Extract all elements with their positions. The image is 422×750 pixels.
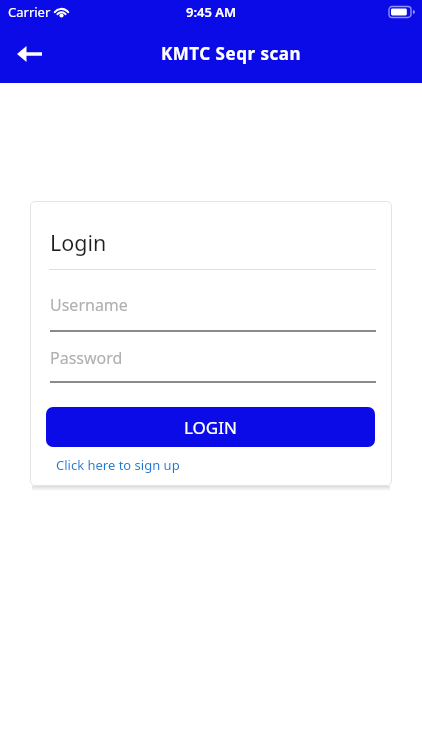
staticText: LOGIN — [184, 416, 237, 439]
staticText: Login — [50, 228, 107, 257]
staticText: Click here to sign up — [56, 456, 180, 474]
staticText: Username — [50, 294, 128, 316]
button[interactable] — [6, 31, 52, 77]
staticText: Password — [50, 347, 123, 369]
staticText: Carrier — [8, 3, 51, 21]
staticText: KMTC Seqr scan — [161, 42, 301, 65]
button[interactable]: Click here to sign up — [50, 453, 186, 477]
button[interactable]: LOGIN — [46, 407, 375, 447]
staticText: 9:45 AM — [186, 3, 237, 21]
